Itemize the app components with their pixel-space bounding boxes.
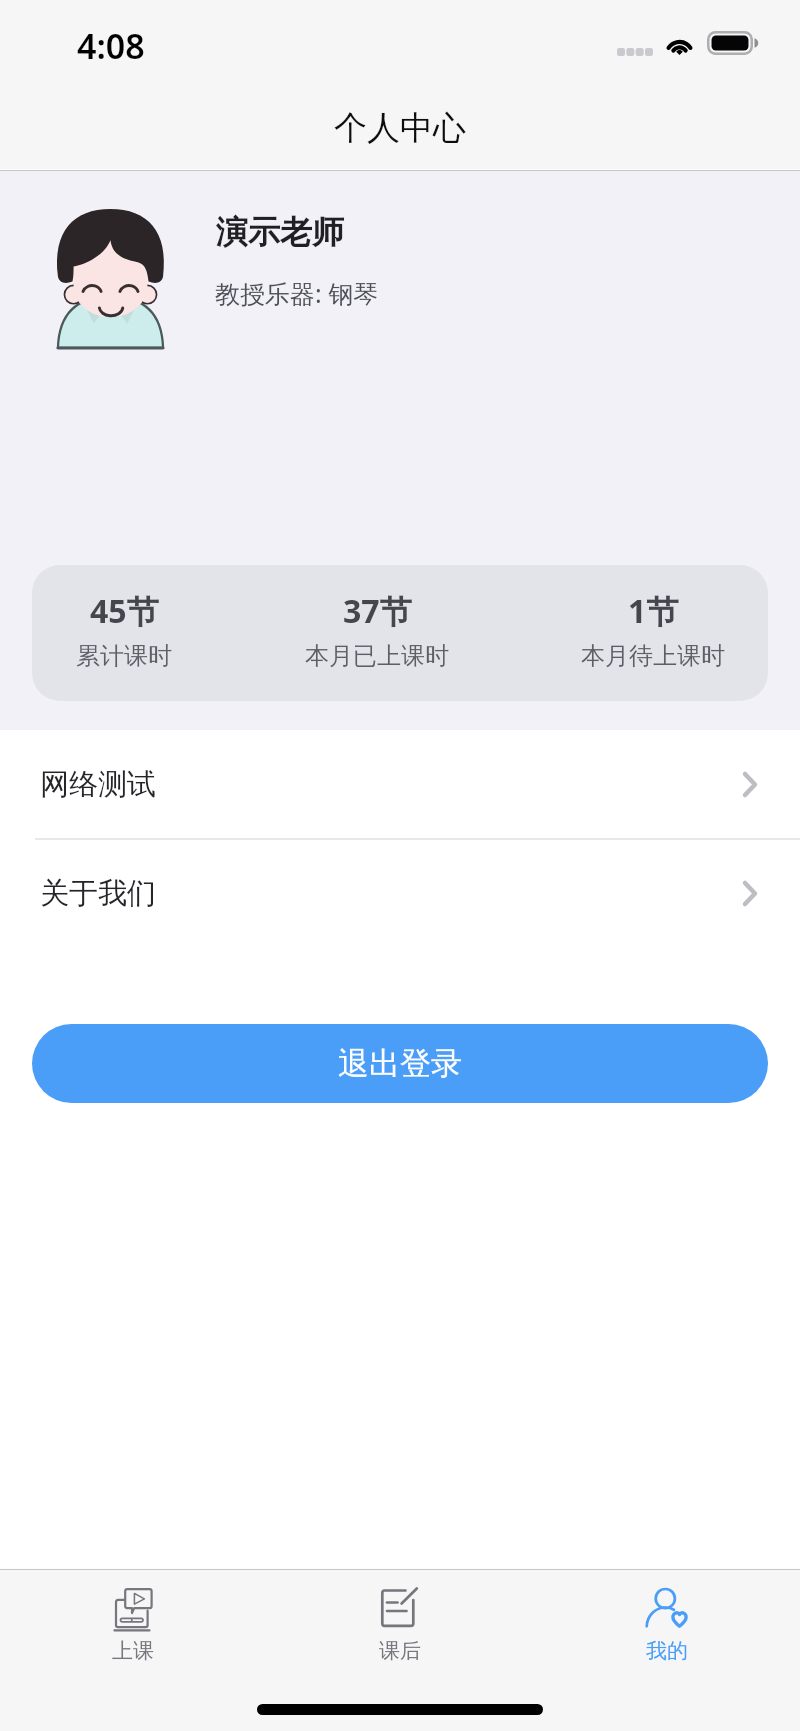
staticText: 37节 [343,589,412,633]
button[interactable]: 上课 [0,1571,266,1681]
staticText: 网络测试 [40,766,156,803]
staticText: 本月已上课时 [305,641,449,671]
button[interactable]: 课后 [266,1571,533,1681]
staticText: 45节 [90,589,159,633]
other: 课后 [381,1588,418,1627]
staticText: 我的 [646,1638,688,1664]
other: 上课 [114,1588,152,1628]
staticText: 课后 [379,1638,421,1664]
staticText: 关于我们 [40,875,156,912]
button[interactable]: 演示老师 [0,190,800,370]
staticText: 个人中心 [334,107,466,149]
button[interactable]: 我的 [533,1571,800,1681]
staticText: 累计课时 [76,641,172,671]
button[interactable]: 退出登录 [32,1024,768,1103]
staticText: 1节 [628,589,679,633]
staticText: 教授乐器: 钢琴 [215,276,379,310]
staticText: 上课 [112,1638,154,1664]
other: 我的 [646,1588,687,1627]
staticText: 退出登录 [338,1044,462,1083]
button[interactable]: 关于我们 [0,839,800,947]
staticText: 4:08 [77,23,145,69]
staticText: 本月待上课时 [581,641,725,671]
staticText: 演示老师 [216,212,344,252]
button[interactable]: 网络测试 [0,730,800,838]
